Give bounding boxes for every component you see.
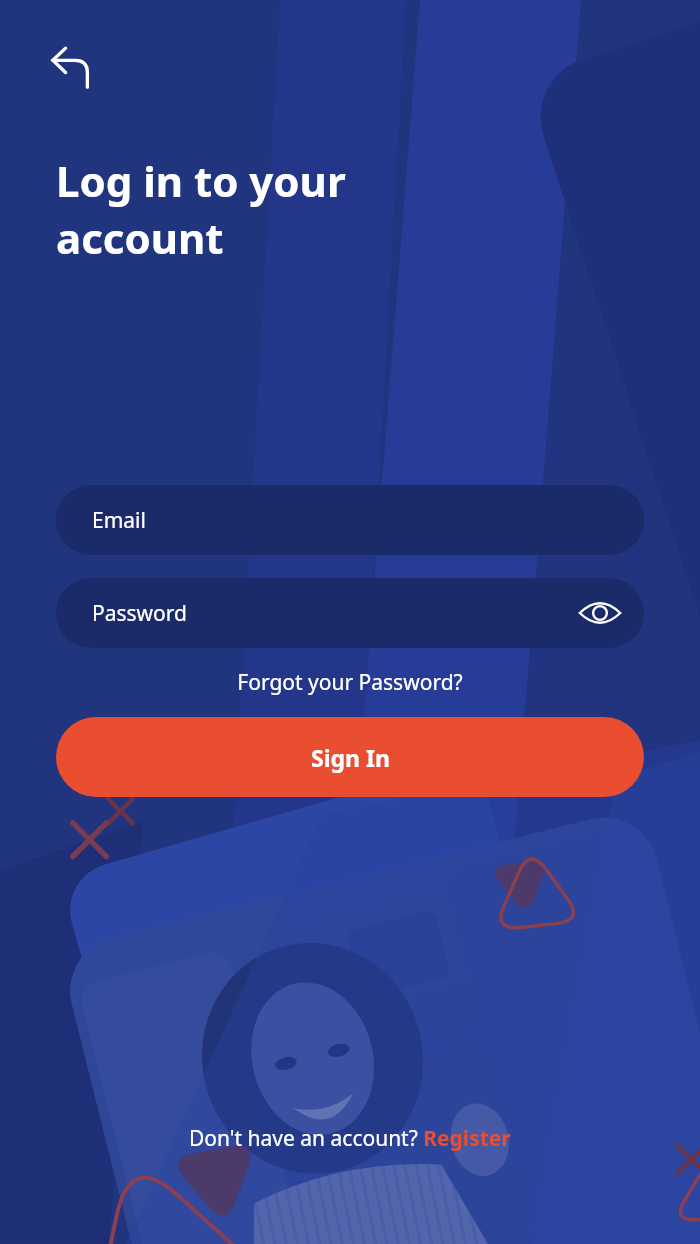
- staticText: Password: [92, 599, 187, 628]
- button[interactable]: Email: [56, 485, 644, 555]
- staticText: Sign In: [311, 742, 390, 773]
- staticText: Log in to your: [56, 152, 346, 209]
- staticText: Email: [92, 506, 146, 535]
- button[interactable]: Back: [40, 36, 104, 100]
- button[interactable]: Don't have an account? Register: [177, 1120, 523, 1157]
- staticText: Forgot your Password?: [237, 668, 463, 697]
- staticText: Don't have an account? Register: [189, 1124, 511, 1153]
- button[interactable]: Show password: [574, 587, 626, 639]
- button[interactable]: Password: [56, 578, 644, 648]
- button[interactable]: Sign In: [56, 717, 644, 797]
- staticText: account: [56, 209, 224, 266]
- button[interactable]: Forgot your Password?: [56, 668, 644, 697]
